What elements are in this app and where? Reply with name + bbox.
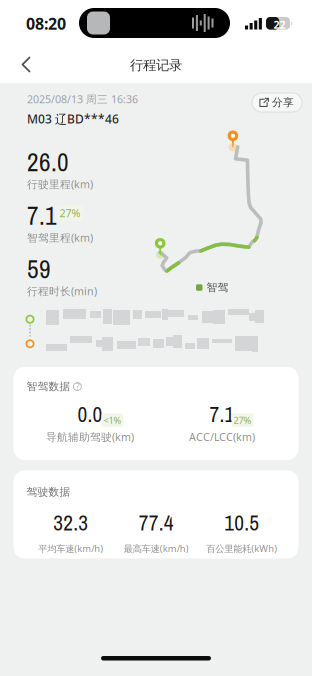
staticText: ? (76, 381, 79, 392)
staticText: 59 (27, 252, 51, 286)
staticText: 7.1 (27, 198, 57, 233)
staticText: 10.5 (224, 508, 259, 537)
staticText: <1% (103, 414, 121, 426)
staticText: 智驾数据 (26, 380, 70, 393)
staticText: 百公里能耗(kWh) (206, 542, 277, 555)
staticText: 驾驶数据 (26, 485, 70, 499)
staticText: 08:20 (26, 13, 66, 34)
staticText: ACC/LCC(km) (189, 430, 255, 444)
staticText: 分享 (272, 96, 294, 109)
staticText: 智驾 (206, 281, 228, 294)
staticText: 22 (273, 17, 285, 32)
staticText: 27% (233, 414, 251, 426)
staticText: 智驾里程(km) (27, 230, 93, 245)
staticText: 2025/08/13 周三 16:36 (27, 92, 138, 106)
staticText: 导航辅助驾驶(km) (46, 430, 134, 444)
staticText: 行程时长(min) (27, 284, 97, 298)
staticText: 行程记录 (130, 57, 182, 73)
staticText: 行驶里程(km) (27, 177, 93, 191)
staticText: 7.1 (209, 400, 234, 429)
staticText: 0.0 (77, 400, 102, 429)
staticText: 77.4 (139, 508, 174, 537)
staticText: 27% (59, 206, 80, 220)
staticText: 32.3 (53, 508, 88, 537)
staticText: M03 辽BD***46 (27, 111, 119, 127)
staticText: 最高车速(km/h) (124, 542, 189, 555)
button[interactable]: Back (6, 47, 48, 83)
staticText: 平均车速(km/h) (38, 542, 103, 555)
staticText: 26.0 (27, 145, 69, 179)
button[interactable]: 分享 (252, 93, 302, 112)
